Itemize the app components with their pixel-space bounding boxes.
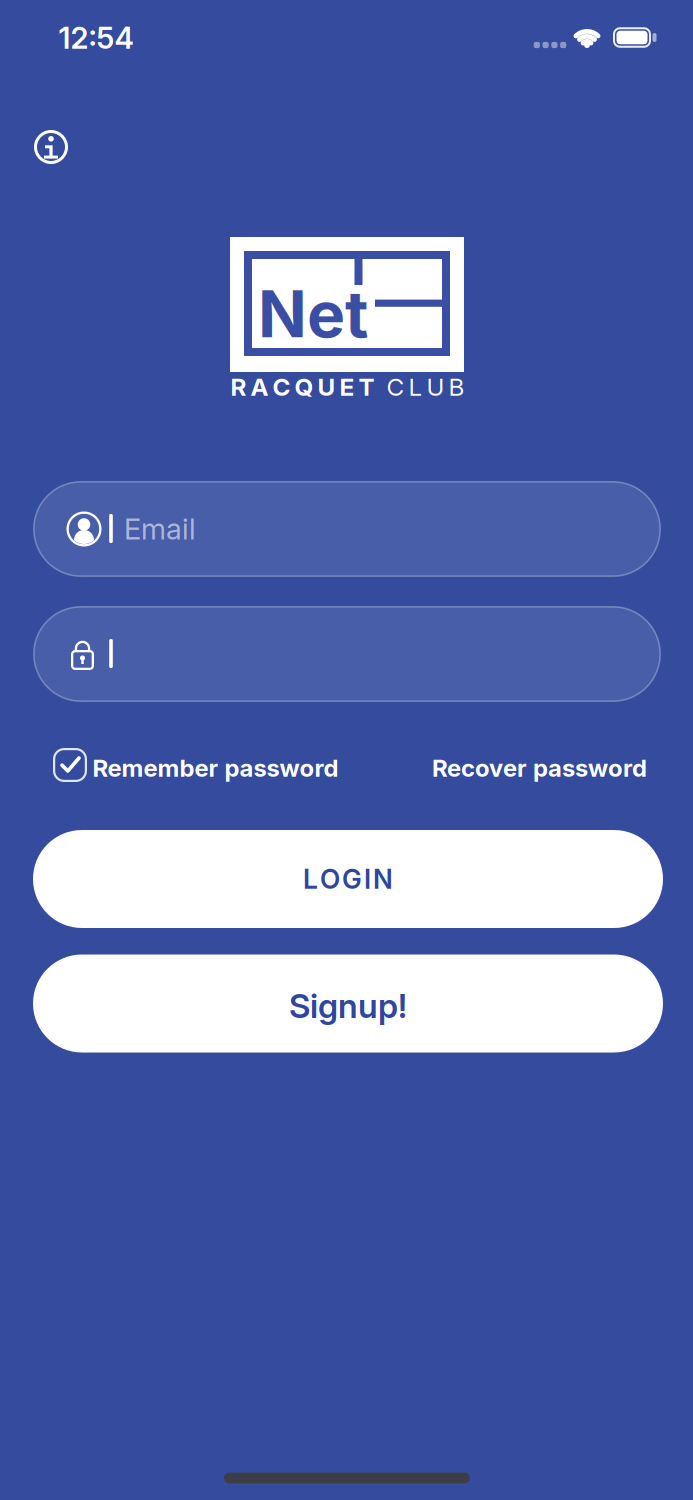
staticText: C L U B (386, 372, 464, 402)
button[interactable]: Email (33, 481, 661, 577)
staticText: Email (124, 511, 196, 547)
staticText: 12:54 (58, 20, 133, 56)
button[interactable] (33, 606, 661, 702)
staticText: Net (258, 275, 368, 353)
staticText: Recover password (432, 753, 647, 782)
button[interactable]: Recover password (432, 753, 647, 782)
button[interactable]: Remember password (53, 748, 353, 782)
button[interactable]: L O G I N (33, 830, 663, 928)
staticText: R A C Q U E T (230, 372, 374, 402)
button[interactable] (33, 129, 68, 164)
staticText: Signup! (289, 986, 407, 1026)
staticText: Remember password (92, 753, 338, 782)
staticText: L O G I N (303, 863, 393, 895)
button[interactable]: Signup! (33, 954, 663, 1052)
